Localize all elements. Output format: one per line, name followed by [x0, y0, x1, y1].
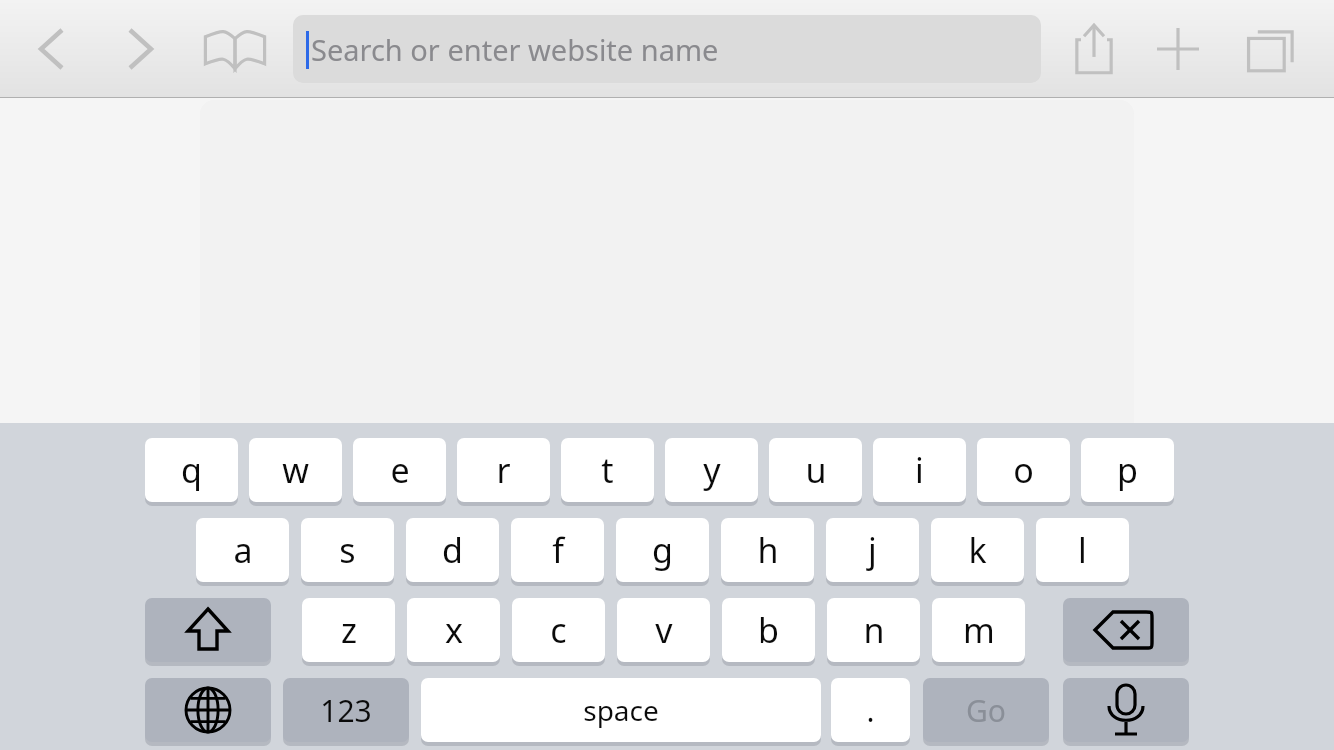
button[interactable]: Shift	[145, 598, 271, 662]
staticText: l	[1078, 527, 1087, 573]
button[interactable]: h	[721, 518, 814, 582]
button[interactable]: Go	[923, 678, 1049, 742]
button[interactable]: n	[827, 598, 920, 662]
staticText: t	[601, 447, 614, 493]
button[interactable]: w	[249, 438, 342, 502]
staticText: r	[496, 447, 511, 493]
button[interactable]: Dictation	[1063, 678, 1189, 742]
button[interactable]: o	[977, 438, 1070, 502]
button[interactable]: c	[512, 598, 605, 662]
button[interactable]: q	[145, 438, 238, 502]
button[interactable]: Forward	[110, 20, 172, 78]
button[interactable]: d	[406, 518, 499, 582]
staticText: c	[550, 607, 567, 653]
button[interactable]: u	[769, 438, 862, 502]
staticText: n	[863, 607, 885, 653]
button[interactable]: e	[353, 438, 446, 502]
button[interactable]: Next Keyboard	[145, 678, 271, 742]
staticText: g	[652, 527, 673, 573]
button[interactable]: .	[831, 678, 910, 742]
button[interactable]: y	[665, 438, 758, 502]
button[interactable]: l	[1036, 518, 1129, 582]
staticText: .	[866, 690, 875, 731]
staticText: v	[655, 607, 673, 653]
staticText: s	[339, 527, 356, 573]
staticText: i	[915, 447, 924, 493]
button[interactable]: Bookmarks	[198, 18, 272, 80]
staticText: q	[181, 447, 202, 493]
staticText: a	[233, 527, 253, 573]
staticText: k	[968, 527, 987, 573]
button[interactable]: New Tab	[1145, 16, 1211, 82]
button[interactable]: m	[932, 598, 1025, 662]
button[interactable]: 123	[283, 678, 409, 742]
button[interactable]: i	[873, 438, 966, 502]
button[interactable]: x	[407, 598, 500, 662]
button[interactable]: t	[561, 438, 654, 502]
button[interactable]: g	[616, 518, 709, 582]
staticText: u	[805, 447, 827, 493]
button[interactable]: Search or enter website name	[293, 15, 1041, 83]
staticText: o	[1013, 447, 1034, 493]
staticText: h	[757, 527, 779, 573]
button[interactable]: Show Tabs	[1238, 16, 1304, 82]
staticText: y	[703, 447, 721, 493]
button[interactable]: k	[931, 518, 1024, 582]
staticText: m	[963, 607, 995, 653]
staticText: 123	[320, 690, 372, 731]
button[interactable]: Backspace	[1063, 598, 1189, 662]
staticText: Go	[966, 690, 1006, 731]
staticText: e	[390, 447, 410, 493]
button[interactable]: s	[301, 518, 394, 582]
staticText: x	[445, 607, 463, 653]
button[interactable]: z	[302, 598, 395, 662]
staticText: j	[868, 527, 877, 573]
button[interactable]: f	[511, 518, 604, 582]
button[interactable]: p	[1081, 438, 1174, 502]
staticText: p	[1117, 447, 1138, 493]
staticText: Search or enter website name	[311, 30, 719, 69]
staticText: d	[442, 527, 463, 573]
staticText: b	[758, 607, 779, 653]
button[interactable]: space	[421, 678, 821, 742]
button[interactable]: b	[722, 598, 815, 662]
staticText: f	[552, 527, 564, 573]
staticText: w	[282, 447, 309, 493]
button[interactable]: Back	[20, 20, 82, 78]
button[interactable]: j	[826, 518, 919, 582]
button[interactable]: v	[617, 598, 710, 662]
button[interactable]: a	[196, 518, 289, 582]
button[interactable]: r	[457, 438, 550, 502]
staticText: z	[341, 607, 357, 653]
staticText: space	[583, 691, 659, 729]
button[interactable]: Share	[1061, 16, 1127, 82]
